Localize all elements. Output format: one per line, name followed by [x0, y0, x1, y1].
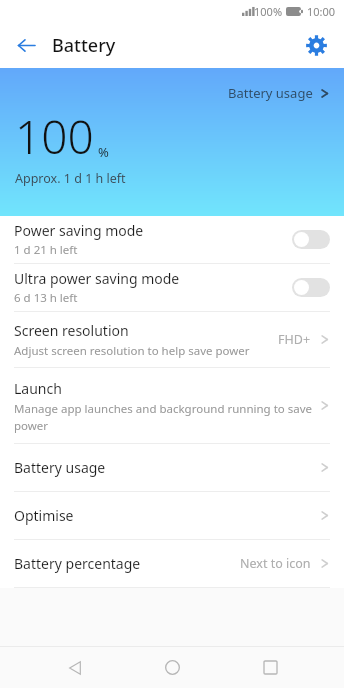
staticText: Manage app launches and background runni…	[14, 401, 313, 433]
staticText: Battery usage	[14, 458, 319, 477]
button[interactable]: Battery percentage	[0, 540, 344, 587]
button[interactable]: Power saving mode	[0, 216, 344, 263]
staticText: Next to icon	[240, 555, 311, 572]
button[interactable]: Ultra power saving mode	[0, 264, 344, 311]
staticText: 6 d 13 h left	[14, 290, 78, 306]
button[interactable]: Battery usage	[0, 444, 344, 491]
button[interactable]: Toggle	[292, 278, 330, 297]
staticText: Battery	[52, 33, 116, 58]
staticText: 100	[15, 105, 94, 168]
staticText: FHD+	[278, 331, 311, 348]
staticText: %	[98, 143, 109, 161]
button[interactable]: Home	[149, 647, 195, 688]
staticText: Ultra power saving mode	[14, 269, 180, 288]
staticText: Power saving mode	[14, 221, 144, 240]
staticText: Battery usage	[228, 84, 313, 102]
button[interactable]: Optimise	[0, 492, 344, 539]
staticText: Adjust screen resolution to help save po…	[14, 343, 250, 359]
staticText: Battery percentage	[14, 554, 240, 573]
staticText: Approx. 1 d 1 h left	[15, 170, 126, 187]
button[interactable]: Battery usage	[224, 81, 334, 105]
button[interactable]: Recents	[247, 647, 293, 688]
button[interactable]: Settings	[301, 30, 331, 60]
staticText: 100%	[254, 4, 283, 19]
staticText: Optimise	[14, 506, 319, 525]
button[interactable]: Launch	[0, 368, 344, 443]
staticText: Launch	[14, 379, 62, 398]
button[interactable]: Screen resolution	[0, 312, 344, 367]
button[interactable]: Back	[52, 647, 98, 688]
staticText: 1 d 21 h left	[14, 242, 78, 258]
button[interactable]: Back	[8, 27, 44, 63]
staticText: 10:00	[307, 4, 336, 19]
staticText: Screen resolution	[14, 321, 129, 340]
button[interactable]: Toggle	[292, 230, 330, 249]
